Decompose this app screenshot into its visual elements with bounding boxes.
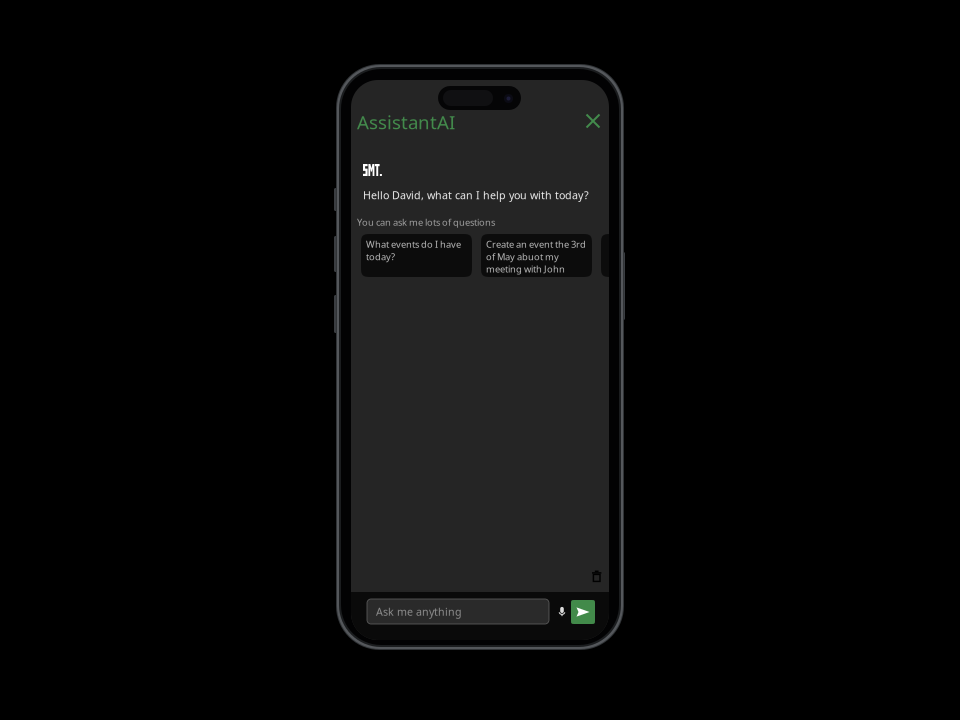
button[interactable]: Create an event the 3rd of May abuot my …	[481, 234, 592, 277]
button[interactable]: Ask me anything	[367, 599, 549, 624]
button[interactable]: What events do I have today?	[361, 234, 472, 277]
staticText: Ask me anything	[376, 604, 462, 619]
button[interactable]: Voice input	[553, 602, 571, 621]
staticText: Create an event the 3rd of May abuot my …	[486, 238, 586, 275]
button[interactable]: Send	[571, 600, 595, 624]
button[interactable]: Close	[582, 110, 604, 132]
button[interactable]: Clear conversation	[587, 566, 607, 586]
button[interactable]	[601, 234, 712, 277]
staticText: Hello David, what can I help you with to…	[363, 188, 589, 202]
staticText: You can ask me lots of questions	[357, 216, 495, 228]
staticText: What events do I have today?	[366, 238, 461, 263]
staticText: AssistantAI	[357, 110, 455, 134]
